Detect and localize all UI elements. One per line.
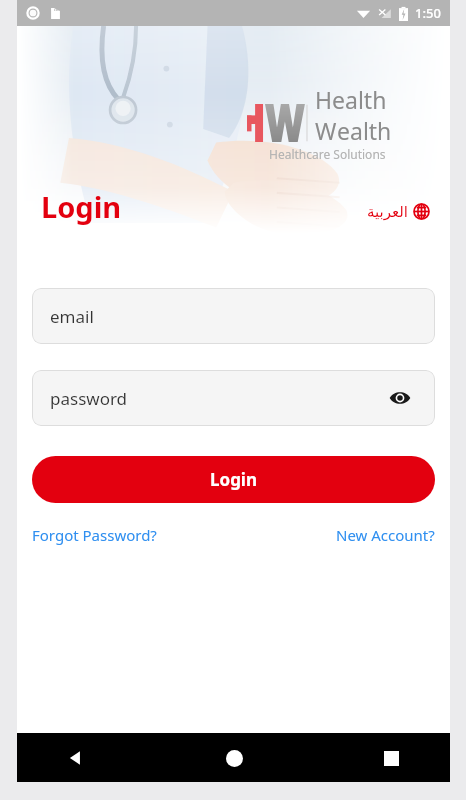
staticText: Login [41, 187, 122, 226]
staticText: Healthcare Solutions [269, 146, 386, 162]
staticText: Login [210, 468, 258, 491]
button[interactable]: email [32, 288, 435, 344]
button[interactable]: Show password [383, 381, 417, 415]
staticText: ealth [337, 115, 392, 146]
button[interactable]: password [32, 370, 435, 426]
button[interactable]: Forgot Password? [32, 525, 157, 545]
staticText: العربية [367, 203, 408, 220]
staticText: password [50, 387, 128, 410]
button[interactable]: Login [32, 456, 435, 503]
staticText: email [50, 305, 94, 328]
staticText: W [315, 115, 337, 146]
staticText: Forgot Password? [32, 525, 157, 545]
button[interactable]: Back [53, 735, 99, 781]
staticText: Health [315, 84, 387, 115]
button[interactable]: Recent apps [368, 735, 414, 781]
button[interactable]: Switch language to Arabic [367, 203, 430, 220]
staticText: New Account? [336, 525, 435, 545]
button[interactable]: New Account? [336, 525, 435, 545]
staticText: 1:50 [415, 4, 441, 22]
button[interactable]: Home [211, 735, 257, 781]
